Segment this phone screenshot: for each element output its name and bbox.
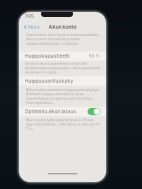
staticText: 88 % xyxy=(88,53,100,59)
staticText: Huippusuorituskyky xyxy=(24,78,73,84)
staticText: Tunnistimme akun hyvän kunnon perusteell… xyxy=(25,32,99,46)
button[interactable]: Akku xyxy=(19,22,43,31)
button[interactable]: Huippukapasiteetti xyxy=(19,52,106,61)
staticText: 7:45 xyxy=(25,13,34,19)
staticText: Huippukapasiteetti xyxy=(24,53,69,59)
staticText: Akun kestävyyden parantamiseksi iPhone o… xyxy=(25,118,99,131)
staticText: Akkusi tukee normaalia huippusuorituskyk… xyxy=(25,87,99,105)
staticText: Akku xyxy=(28,24,40,30)
staticText: Akun kunto xyxy=(48,24,76,30)
button[interactable]: Optimoitu akun lataus xyxy=(19,107,106,116)
staticText: Optimoitu akun lataus xyxy=(24,109,76,114)
button[interactable]: Huippusuorituskyky xyxy=(19,76,106,85)
staticText: Tämä on akun kapasiteetin suhde sen alku… xyxy=(24,61,100,74)
